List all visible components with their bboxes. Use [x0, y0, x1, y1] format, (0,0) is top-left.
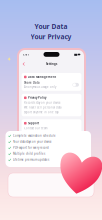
staticText: Your Privacy [30, 32, 71, 41]
staticText: We never sell personal data [24, 106, 61, 109]
staticText: Your data stays on your device [13, 140, 52, 143]
staticText: Your Data [34, 22, 67, 31]
staticText: Contact our team [24, 126, 47, 130]
staticText: ▮▮▮ [74, 53, 77, 56]
staticText: Anonymous usage only [24, 85, 56, 89]
staticText: Settings [46, 62, 57, 66]
staticText: Support [28, 121, 39, 125]
staticText: Lifetime premium updates [13, 158, 49, 161]
staticText: Records stay on your device [24, 101, 61, 104]
staticText: Multiple child profiles [13, 152, 45, 155]
staticText: 9:41 [23, 53, 30, 56]
staticText: Export anytime in one tap [24, 111, 59, 114]
staticText: Share Data [24, 81, 40, 84]
staticText: Data Management [28, 75, 56, 79]
staticText: Reply within 24 hours [24, 131, 56, 135]
staticText: Privacy Policy [28, 96, 46, 99]
staticText: PDF export for every record [13, 146, 49, 149]
button[interactable]: Back [22, 61, 25, 67]
staticText: Complete vaccination schedule [13, 134, 56, 137]
